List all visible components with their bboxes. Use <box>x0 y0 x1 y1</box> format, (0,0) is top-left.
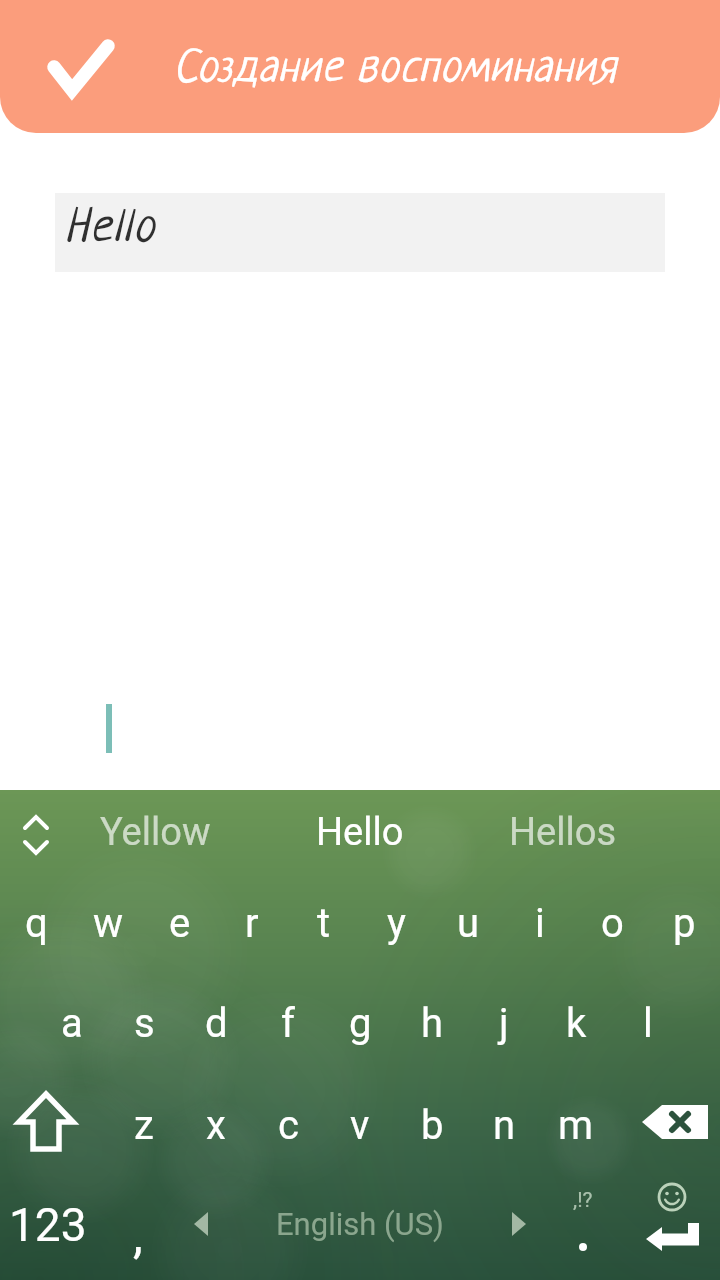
button[interactable]: z <box>108 1074 180 1176</box>
button[interactable]: o <box>576 872 648 974</box>
button[interactable]: u <box>432 872 504 974</box>
button[interactable]: j <box>468 972 540 1074</box>
staticText: Hellos <box>509 810 617 855</box>
button[interactable]: f <box>252 972 324 1074</box>
button[interactable]: i <box>504 872 576 974</box>
staticText: Hello <box>65 204 157 255</box>
staticText: s <box>134 1000 155 1047</box>
button[interactable]: b <box>396 1074 468 1176</box>
staticText: Yellow <box>100 810 211 855</box>
staticText: u <box>457 900 480 947</box>
staticText: k <box>566 1000 587 1047</box>
button[interactable]: , <box>95 1178 180 1280</box>
staticText: English (US) <box>276 1206 444 1242</box>
staticText: x <box>206 1102 226 1149</box>
staticText: m <box>558 1102 594 1149</box>
staticText: b <box>421 1102 444 1149</box>
staticText: 123 <box>9 1198 87 1252</box>
staticText: , <box>133 1206 143 1265</box>
staticText: d <box>205 1000 228 1047</box>
button[interactable]: c <box>252 1074 324 1176</box>
button[interactable]: Hello <box>260 790 460 874</box>
staticText: w <box>93 900 124 947</box>
button[interactable]: e <box>144 872 216 974</box>
staticText: i <box>535 900 545 947</box>
button[interactable]: m <box>540 1074 612 1176</box>
button[interactable] <box>30 22 140 118</box>
staticText: v <box>350 1102 370 1149</box>
button[interactable]: h <box>396 972 468 1074</box>
button[interactable]: g <box>324 972 396 1074</box>
staticText: c <box>278 1102 299 1149</box>
staticText: l <box>643 1000 653 1047</box>
staticText: y <box>387 900 406 947</box>
button[interactable]: Hellos <box>463 790 663 874</box>
staticText: t <box>317 900 331 947</box>
staticText: z <box>134 1102 154 1149</box>
staticText: r <box>245 900 259 947</box>
button[interactable]: k <box>540 972 612 1074</box>
button[interactable]: r <box>216 872 288 974</box>
button[interactable] <box>625 1178 720 1280</box>
staticText: f <box>281 1000 295 1047</box>
staticText: Hello <box>316 810 404 855</box>
button[interactable] <box>10 804 62 866</box>
button[interactable]: q <box>0 872 72 974</box>
staticText: j <box>499 1000 509 1047</box>
button[interactable] <box>2 1071 90 1173</box>
staticText: p <box>673 900 696 947</box>
staticText: ,!? <box>573 1188 593 1213</box>
button[interactable]: l <box>612 972 684 1074</box>
staticText: e <box>169 900 191 947</box>
button[interactable]: n <box>468 1074 540 1176</box>
staticText: o <box>601 900 624 947</box>
button[interactable]: 123 <box>0 1178 95 1280</box>
staticText: a <box>61 1000 83 1047</box>
staticText: q <box>25 900 48 947</box>
button[interactable]: Hello <box>55 193 665 272</box>
button[interactable]: w <box>72 872 144 974</box>
button[interactable]: s <box>108 972 180 1074</box>
button[interactable]: y <box>360 872 432 974</box>
button[interactable]: d <box>180 972 252 1074</box>
button[interactable]: v <box>324 1074 396 1176</box>
staticText: n <box>493 1102 516 1149</box>
button[interactable] <box>630 1071 720 1173</box>
staticText: Создание воспоминания <box>173 46 617 94</box>
button[interactable]: Yellow <box>55 790 255 874</box>
button[interactable]: English (US) <box>180 1178 520 1280</box>
button[interactable]: ,!? <box>540 1178 625 1280</box>
button[interactable]: a <box>36 972 108 1074</box>
staticText: h <box>421 1000 444 1047</box>
staticText: g <box>349 1000 372 1047</box>
button[interactable]: x <box>180 1074 252 1176</box>
button[interactable]: t <box>288 872 360 974</box>
button[interactable]: p <box>648 872 720 974</box>
